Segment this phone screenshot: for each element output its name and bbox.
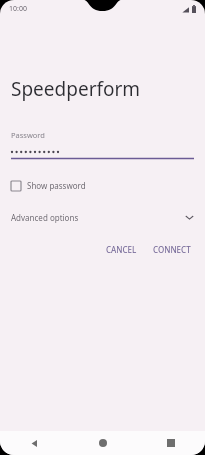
button[interactable]: Home [69,431,137,455]
button[interactable]: Advanced options [0,208,205,227]
staticText: CONNECT [153,244,191,255]
other: Expand advanced options [185,213,194,222]
button[interactable]: Back [0,431,69,455]
button[interactable]: Show password [9,177,88,194]
staticText: Password [11,130,45,140]
button[interactable]: CONNECT [147,240,197,259]
staticText: 10:00 [9,4,27,14]
staticText: Speedperform [11,76,141,102]
button[interactable]: Recent apps [137,431,205,455]
staticText: Show password [27,180,86,191]
button[interactable] [0,148,205,164]
staticText: Advanced options [11,212,79,223]
staticText: CANCEL [106,244,137,255]
button[interactable]: CANCEL [100,240,143,259]
